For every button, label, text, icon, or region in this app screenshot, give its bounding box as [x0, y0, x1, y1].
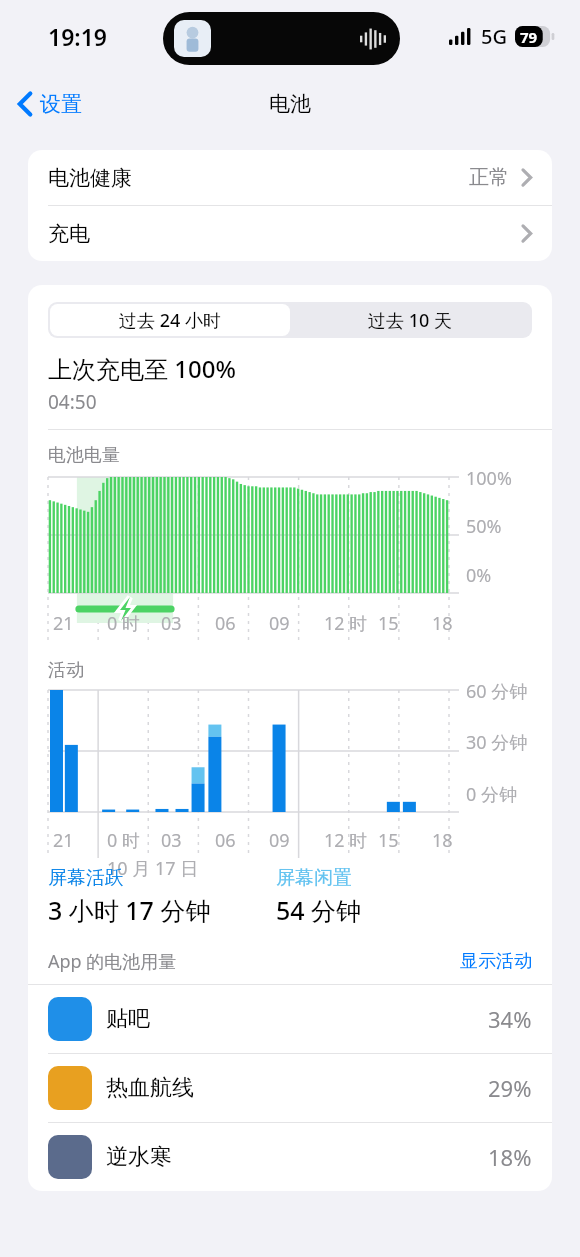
staticText: 21 [53, 828, 74, 853]
staticText: 5G [481, 23, 507, 50]
staticText: 电池健康 [48, 165, 132, 191]
button[interactable]: 电池健康 [28, 150, 552, 205]
button[interactable]: 逆水寒 [28, 1123, 552, 1191]
staticText: 30 分钟 [466, 730, 528, 755]
staticText: 过去 24 小时 [119, 308, 221, 333]
staticText: App 的电池用量 [48, 949, 177, 974]
staticText: 09 [269, 828, 290, 853]
staticText: 3 小时 17 分钟 [48, 893, 211, 927]
staticText: 正常 [469, 165, 509, 190]
staticText: 12 时 [324, 611, 368, 636]
staticText: 10 月 17 日 [107, 856, 199, 881]
button[interactable]: 热血航线 [28, 1054, 552, 1122]
staticText: 0 分钟 [466, 782, 517, 807]
staticText: 18% [488, 1142, 532, 1172]
staticText: 60 分钟 [466, 679, 528, 704]
staticText: 电池电量 [48, 444, 120, 467]
staticText: 21 [53, 611, 74, 636]
staticText: 充电 [48, 221, 90, 247]
staticText: 18 [432, 828, 453, 853]
staticText: 上次充电至 100% [48, 352, 236, 385]
button[interactable]: 显示活动 [460, 950, 532, 973]
staticText: 贴吧 [106, 1005, 150, 1033]
staticText: 09 [269, 611, 290, 636]
staticText: 逆水寒 [106, 1143, 172, 1171]
staticText: 29% [488, 1073, 532, 1103]
staticText: 06 [215, 828, 236, 853]
staticText: 12 时 [324, 828, 368, 853]
staticText: 热血航线 [106, 1074, 194, 1102]
staticText: 54 分钟 [276, 893, 362, 927]
button[interactable]: 设置 [14, 87, 86, 121]
staticText: 显示活动 [460, 950, 532, 973]
staticText: 100% [466, 466, 512, 491]
staticText: 0 时 [107, 828, 140, 853]
button[interactable]: 过去 24 小时 [50, 304, 290, 336]
button[interactable]: 贴吧 [28, 985, 552, 1053]
staticText: 19:19 [48, 21, 107, 52]
staticText: 04:50 [48, 389, 97, 415]
staticText: 15 [378, 828, 399, 853]
staticText: 屏幕活跃 [48, 866, 124, 890]
staticText: 0% [466, 563, 492, 588]
staticText: 03 [161, 828, 182, 853]
staticText: 34% [488, 1004, 532, 1034]
staticText: 活动 [48, 659, 84, 682]
staticText: 0 时 [107, 611, 140, 636]
staticText: 电池 [269, 91, 311, 117]
staticText: 50% [466, 514, 502, 539]
staticText: 03 [161, 611, 182, 636]
staticText: 18 [432, 611, 453, 636]
button[interactable]: 充电 [28, 206, 552, 261]
button[interactable]: 过去 10 天 [290, 304, 530, 336]
staticText: 屏幕闲置 [276, 866, 352, 890]
staticText: 79 [520, 27, 538, 47]
staticText: 过去 10 天 [368, 308, 452, 333]
staticText: 06 [215, 611, 236, 636]
staticText: 15 [378, 611, 399, 636]
staticText: 设置 [40, 91, 82, 117]
